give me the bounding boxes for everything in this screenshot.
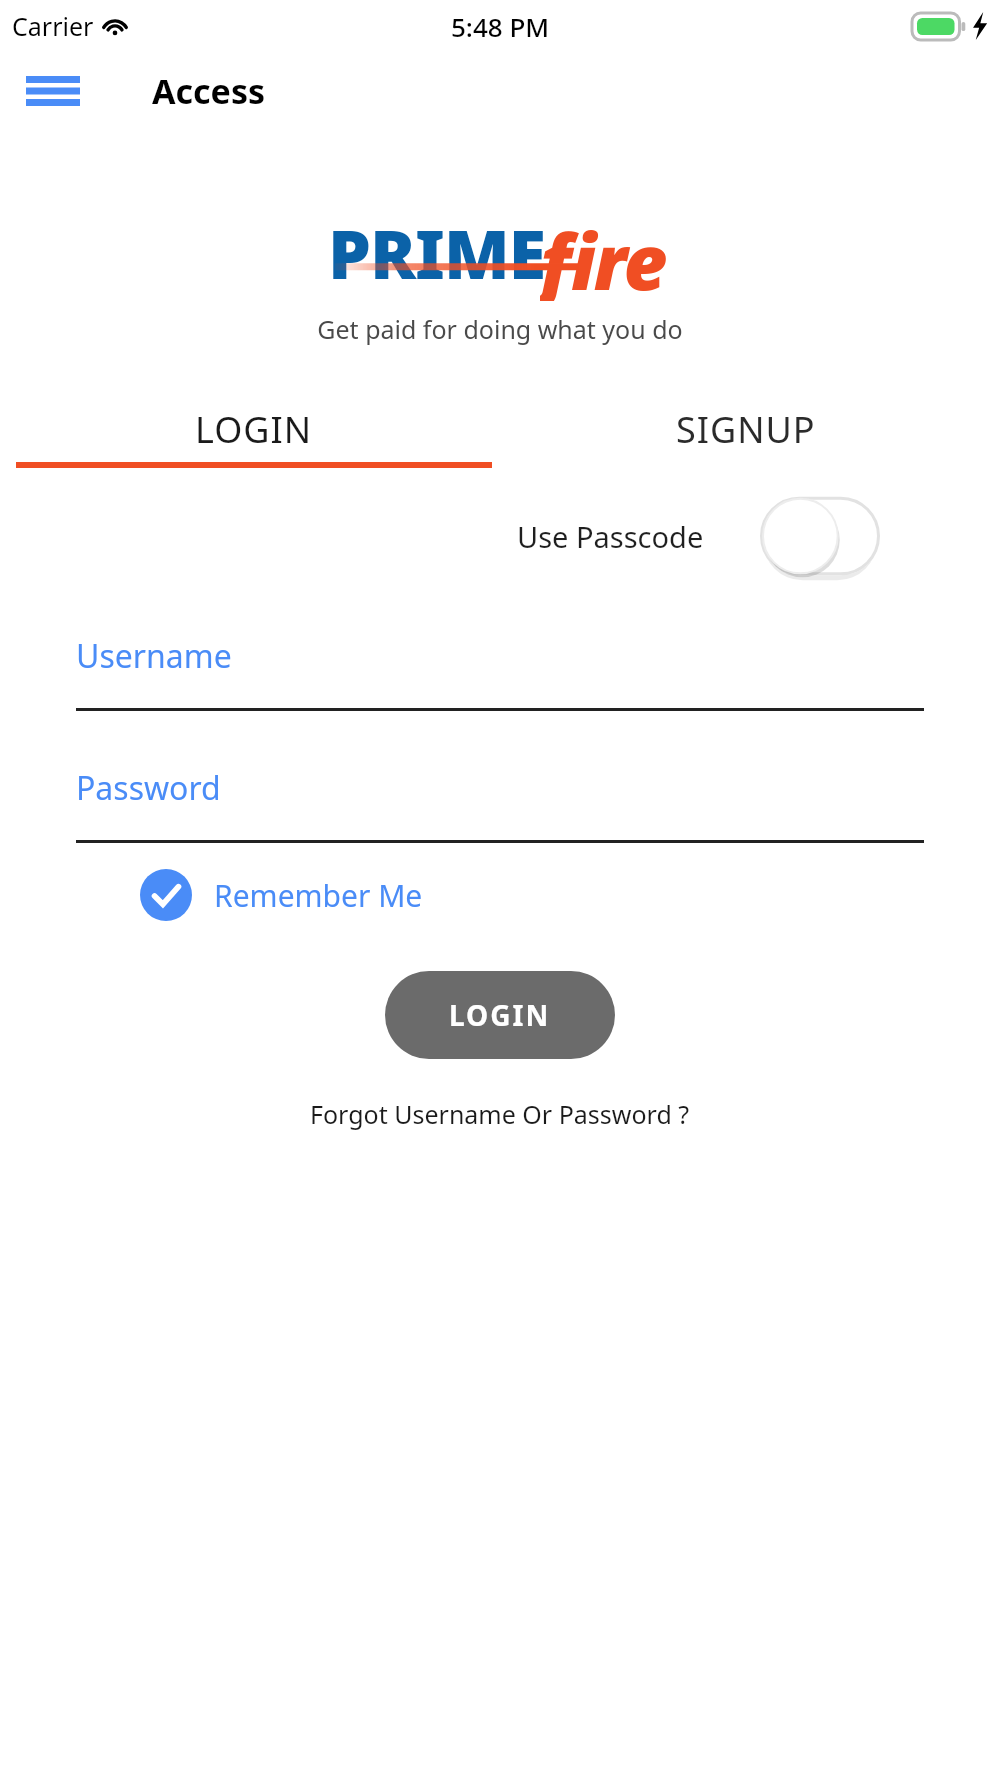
staticText: Username xyxy=(76,634,232,678)
staticText: Access xyxy=(152,68,266,114)
staticText: Password xyxy=(76,766,221,810)
staticText: fire xyxy=(540,209,666,301)
staticText: Use Passcode xyxy=(517,517,704,556)
button[interactable]: Menu xyxy=(20,63,86,119)
button[interactable]: LOGIN xyxy=(8,396,500,462)
staticText: 5:48 PM xyxy=(451,9,550,44)
staticText: Carrier xyxy=(12,9,94,43)
staticText: SIGNUP xyxy=(676,405,816,454)
staticText: PRIME xyxy=(328,206,546,298)
button[interactable]: Forgot Username Or Password ? xyxy=(0,1097,1000,1131)
button[interactable]: Username xyxy=(76,634,924,711)
button[interactable]: Password xyxy=(76,766,924,843)
button[interactable]: SIGNUP xyxy=(500,396,992,462)
staticText: Remember Me xyxy=(214,875,423,916)
button[interactable]: LOGIN xyxy=(385,971,615,1059)
button[interactable]: Remember Me xyxy=(140,869,423,921)
staticText: Get paid for doing what you do xyxy=(0,312,1000,346)
staticText: LOGIN xyxy=(449,996,551,1034)
staticText: LOGIN xyxy=(195,405,313,454)
button[interactable]: Use Passcode xyxy=(517,495,880,577)
staticText: Forgot Username Or Password ? xyxy=(310,1097,690,1131)
